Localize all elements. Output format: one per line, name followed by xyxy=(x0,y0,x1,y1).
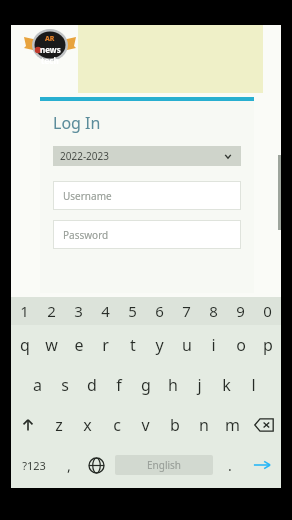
button[interactable]: 3 xyxy=(65,297,92,325)
button[interactable]: 9 xyxy=(227,297,254,325)
staticText: y xyxy=(155,334,164,356)
staticText: c xyxy=(113,414,121,436)
staticText: o xyxy=(236,334,246,356)
staticText: r xyxy=(102,334,109,356)
staticText: 6 xyxy=(155,301,164,321)
staticText: w xyxy=(45,334,58,356)
staticText: j xyxy=(197,374,202,396)
staticText: 3 xyxy=(74,301,83,321)
button[interactable]: Shift xyxy=(11,405,44,445)
staticText: ?123 xyxy=(22,458,46,473)
staticText: s xyxy=(61,374,69,396)
staticText: 0 xyxy=(263,301,272,321)
button[interactable]: p xyxy=(254,325,281,365)
button[interactable]: . xyxy=(217,445,243,485)
staticText: 7 xyxy=(182,301,191,321)
staticText: , xyxy=(67,456,71,475)
button[interactable]: f xyxy=(105,365,132,405)
button[interactable]: d xyxy=(78,365,105,405)
staticText: Password xyxy=(63,228,109,242)
staticText: news xyxy=(40,44,61,55)
button[interactable]: 0 xyxy=(254,297,281,325)
button[interactable]: q xyxy=(11,325,38,365)
staticText: i xyxy=(211,334,216,356)
button[interactable]: z xyxy=(44,405,73,445)
staticText: d xyxy=(87,374,97,396)
staticText: Log In xyxy=(53,112,101,134)
button[interactable]: Password xyxy=(53,220,241,249)
staticText: 2022-2023 xyxy=(60,149,223,163)
button[interactable]: b xyxy=(160,405,189,445)
button[interactable]: Change language xyxy=(82,445,111,485)
staticText: 5 xyxy=(128,301,137,321)
button[interactable]: y xyxy=(146,325,173,365)
staticText: English xyxy=(147,458,182,472)
staticText: b xyxy=(170,414,180,436)
button[interactable]: m xyxy=(218,405,247,445)
staticText: p xyxy=(263,334,273,356)
button[interactable]: u xyxy=(173,325,200,365)
staticText: q xyxy=(20,334,30,356)
staticText: v xyxy=(141,414,150,436)
button[interactable]: n xyxy=(189,405,218,445)
button[interactable]: Enter xyxy=(243,445,281,485)
button[interactable]: l xyxy=(240,365,267,405)
staticText: e xyxy=(74,334,84,356)
button[interactable]: ?123 xyxy=(11,445,56,485)
button[interactable]: Username xyxy=(53,181,241,210)
staticText: AR xyxy=(45,34,55,44)
button[interactable]: Backspace xyxy=(247,405,281,445)
button[interactable]: c xyxy=(102,405,131,445)
staticText: t xyxy=(130,334,136,356)
staticText: 4 xyxy=(101,301,110,321)
button[interactable]: v xyxy=(131,405,160,445)
staticText: l xyxy=(251,374,256,396)
staticText: 9 xyxy=(236,301,245,321)
staticText: u xyxy=(182,334,192,356)
button[interactable]: 7 xyxy=(173,297,200,325)
staticText: k xyxy=(222,374,231,396)
button[interactable]: , xyxy=(56,445,82,485)
other: AR News N Tech logo xyxy=(24,25,76,65)
button[interactable]: k xyxy=(213,365,240,405)
button[interactable]: h xyxy=(159,365,186,405)
button[interactable]: o xyxy=(227,325,254,365)
button[interactable]: r xyxy=(92,325,119,365)
staticText: h xyxy=(168,374,178,396)
button[interactable]: e xyxy=(65,325,92,365)
staticText: z xyxy=(55,414,63,436)
button[interactable]: 5 xyxy=(119,297,146,325)
button[interactable]: i xyxy=(200,325,227,365)
staticText: n xyxy=(199,414,209,436)
button[interactable]: 8 xyxy=(200,297,227,325)
staticText: 8 xyxy=(209,301,218,321)
button[interactable]: s xyxy=(51,365,78,405)
staticText: x xyxy=(83,414,92,436)
button[interactable]: 6 xyxy=(146,297,173,325)
button[interactable]: 2 xyxy=(38,297,65,325)
staticText: tech xyxy=(41,55,59,65)
button[interactable]: 4 xyxy=(92,297,119,325)
button[interactable]: j xyxy=(186,365,213,405)
button[interactable]: 1 xyxy=(11,297,38,325)
staticText: g xyxy=(141,374,151,396)
button[interactable]: x xyxy=(73,405,102,445)
staticText: f xyxy=(116,374,122,396)
button[interactable]: w xyxy=(38,325,65,365)
button[interactable]: English xyxy=(115,455,213,475)
button[interactable]: t xyxy=(119,325,146,365)
staticText: 1 xyxy=(20,301,29,321)
staticText: . xyxy=(228,456,232,475)
staticText: a xyxy=(33,374,42,396)
staticText: Username xyxy=(63,189,112,203)
button[interactable]: a xyxy=(24,365,51,405)
staticText: m xyxy=(225,414,240,436)
staticText: 2 xyxy=(47,301,56,321)
button[interactable]: g xyxy=(132,365,159,405)
button[interactable]: 2022-2023 xyxy=(53,146,241,166)
